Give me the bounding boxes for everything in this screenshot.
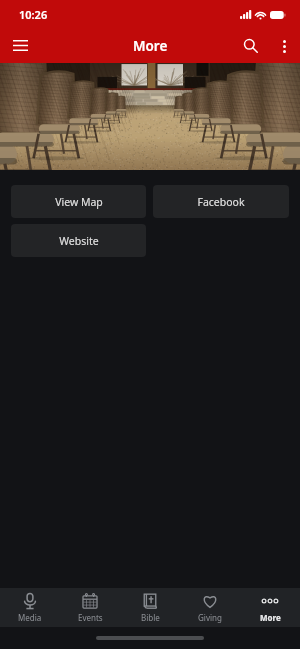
- button[interactable]: More: [240, 592, 300, 623]
- button[interactable]: Bible: [120, 592, 180, 623]
- staticText: Events: [78, 612, 103, 623]
- staticText: Bible: [141, 612, 160, 623]
- staticText: Giving: [198, 612, 222, 623]
- button[interactable]: Facebook: [153, 185, 289, 218]
- button[interactable]: Events: [60, 592, 120, 623]
- button[interactable]: Search: [232, 28, 268, 63]
- staticText: Website: [59, 234, 99, 248]
- button[interactable]: Menu: [0, 28, 40, 63]
- button[interactable]: More options: [268, 30, 300, 62]
- staticText: Facebook: [197, 195, 245, 209]
- staticText: 10:26: [19, 7, 48, 22]
- button[interactable]: Giving: [180, 592, 240, 623]
- staticText: More: [260, 612, 281, 623]
- button[interactable]: Website: [11, 224, 146, 257]
- button[interactable]: View Map: [11, 185, 146, 218]
- button[interactable]: Media: [0, 592, 60, 623]
- staticText: Media: [18, 612, 42, 623]
- staticText: More: [133, 37, 168, 55]
- staticText: View Map: [55, 195, 103, 209]
